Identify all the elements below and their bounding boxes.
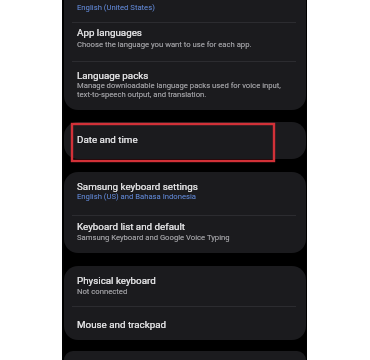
staticText: English (US) and Bahasa Indonesia [77,192,197,201]
other: Highlight around Date and time [71,123,275,162]
staticText: Manage downloadable language packs used … [77,81,281,99]
button[interactable]: Language packs [65,62,305,110]
button[interactable]: Physical keyboard [65,266,305,306]
staticText: Physical keyboard [77,275,156,286]
staticText: Choose the language you want to use for … [77,40,252,49]
staticText: Mouse and trackpad [77,319,167,330]
button[interactable]: Mouse and trackpad [65,307,305,340]
button[interactable]: English (United States) [65,0,305,22]
staticText: Samsung keyboard settings [77,181,198,192]
button[interactable]: Samsung keyboard settings [65,172,305,215]
staticText: Language packs [77,70,149,81]
button[interactable]: Keyboard list and default [65,216,305,253]
staticText: App languages [77,27,142,38]
staticText: Not connected [77,287,128,296]
staticText: English (United States) [77,3,155,12]
staticText: Date and time [77,134,138,145]
button[interactable]: Date and time [65,122,305,159]
staticText: Keyboard list and default [77,221,185,232]
staticText: Samsung Keyboard and Google Voice Typing [77,233,230,242]
button[interactable]: App languages [65,23,305,61]
